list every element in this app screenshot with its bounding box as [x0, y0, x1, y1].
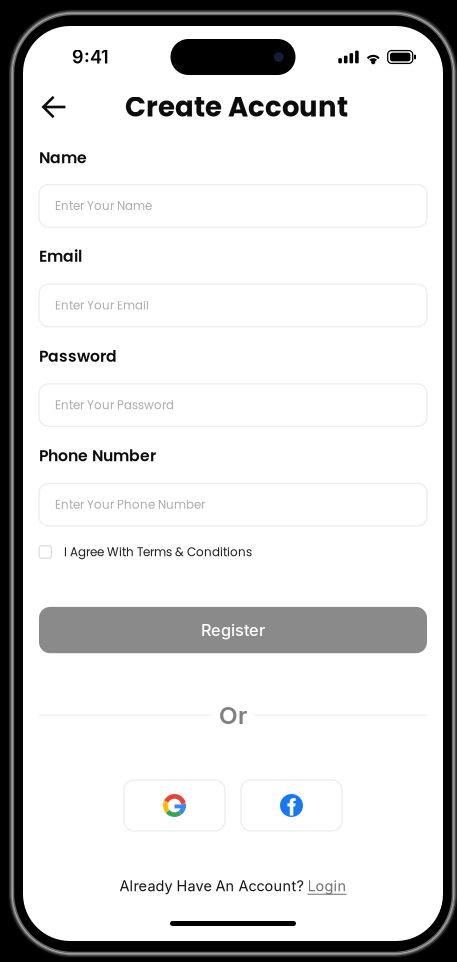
button[interactable]: Enter Your Name: [39, 185, 427, 227]
button[interactable]: Continue with Facebook: [241, 780, 342, 831]
staticText: Enter Your Email: [55, 297, 149, 314]
staticText: Register: [201, 620, 265, 640]
button[interactable]: I Agree With Terms & Conditions: [39, 541, 427, 563]
button[interactable]: Enter Your Email: [39, 284, 427, 327]
button[interactable]: Enter Your Password: [39, 384, 427, 426]
staticText: 9:41: [72, 46, 109, 68]
staticText: Already Have An Account?: [119, 877, 307, 895]
staticText: Enter Your Phone Number: [55, 496, 205, 513]
staticText: Phone Number: [39, 445, 156, 467]
button[interactable]: Enter Your Phone Number: [39, 483, 427, 526]
staticText: Create Account: [125, 88, 348, 126]
button[interactable]: Register: [39, 607, 427, 653]
staticText: I Agree With Terms & Conditions: [64, 544, 252, 560]
button[interactable]: Continue with Google: [124, 780, 225, 831]
button[interactable]: Already Have An Account?: [23, 874, 443, 898]
staticText: Password: [39, 345, 117, 367]
staticText: Name: [39, 147, 87, 169]
staticText: Enter Your Password: [55, 397, 174, 413]
staticText: Or: [219, 700, 247, 730]
staticText: Enter Your Name: [55, 198, 152, 214]
staticText: Login: [307, 877, 346, 895]
staticText: Email: [39, 245, 82, 267]
button[interactable]: Back: [32, 85, 76, 129]
